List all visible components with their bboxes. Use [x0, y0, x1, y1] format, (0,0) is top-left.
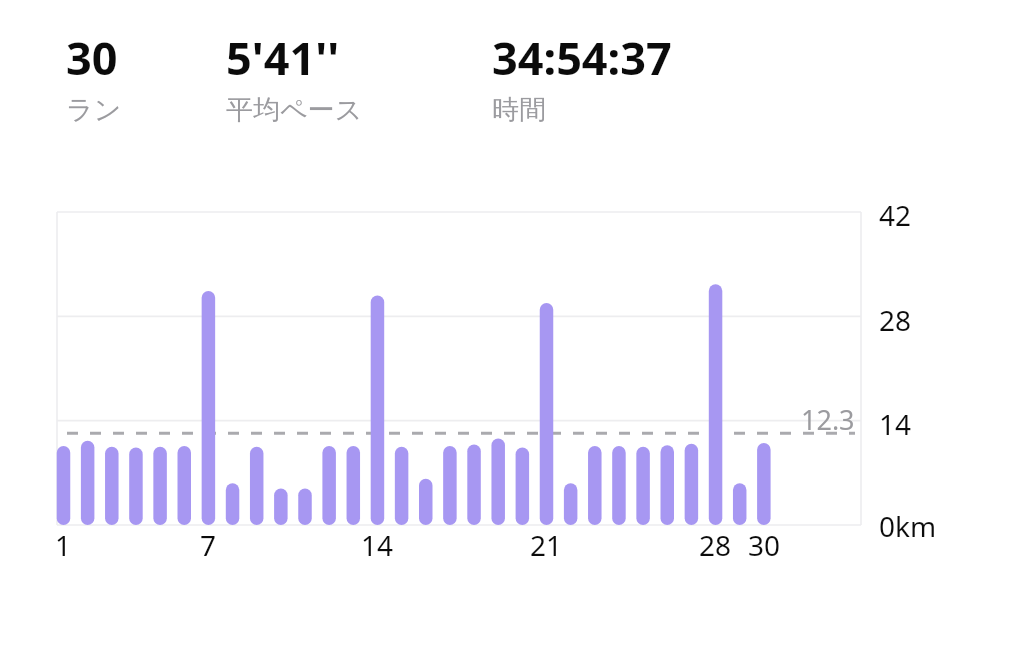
staticText: 30	[739, 526, 789, 564]
staticText: 5'41''	[226, 27, 340, 88]
staticText: 30	[66, 27, 118, 88]
staticText: 時間	[492, 93, 546, 127]
staticText: 42	[879, 196, 912, 234]
staticText: 14	[879, 405, 912, 443]
staticText: 28	[690, 526, 740, 564]
staticText: 平均ペース	[226, 93, 363, 127]
staticText: 0km	[879, 507, 937, 545]
staticText: 7	[183, 526, 233, 564]
staticText: 14	[352, 526, 402, 564]
staticText: 12.3	[801, 401, 855, 438]
button[interactable]: 5'41''	[226, 27, 363, 127]
staticText: 28	[879, 301, 912, 339]
button[interactable]: 30	[66, 27, 122, 127]
button[interactable]: 34:54:37	[492, 27, 672, 127]
staticText: 21	[521, 526, 571, 564]
staticText: ラン	[66, 93, 122, 127]
staticText: 1	[38, 526, 88, 564]
staticText: 34:54:37	[492, 27, 672, 88]
